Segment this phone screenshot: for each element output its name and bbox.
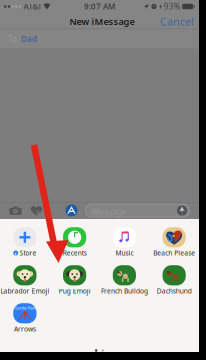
button[interactable]: Get the Point [0,303,50,341]
staticText: Arrows [14,325,36,333]
staticText: To: [8,33,21,44]
button[interactable]: Camera [6,202,24,219]
staticText: New iMessage [69,15,134,28]
button[interactable]: Labrador Emoji [0,265,50,303]
button[interactable]: Recents [50,227,100,265]
button[interactable]: French Bulldog [99,265,149,303]
staticText: Cancel [160,14,194,29]
button[interactable]: Digital Touch [27,202,45,219]
staticText: Get the Point [14,305,35,310]
staticText: 93% [164,1,181,12]
staticText: Pug Emoji [59,287,91,295]
button[interactable]: iMessage Apps [62,202,80,219]
button[interactable]: iMessage [85,204,189,217]
button[interactable]: Beach Please [149,227,199,265]
button[interactable]: Store [0,227,50,265]
button[interactable]: Music [99,227,149,265]
button[interactable]: Pug Emoji [50,265,100,303]
staticText: iMessage [90,207,126,217]
staticText: Music [115,249,133,257]
staticText: Dad [21,33,37,44]
staticText: Beach Please [153,249,195,257]
staticText: Dachshund [157,287,192,295]
button[interactable]: Cancel [155,13,199,29]
button[interactable]: Dachshund [149,265,199,303]
staticText: Store [19,249,36,257]
staticText: AT&T [23,1,41,12]
staticText: 9:07 AM [84,1,115,12]
button[interactable]: To: [0,29,199,48]
staticText: French Bulldog [101,287,148,295]
staticText: Recents [63,249,87,257]
staticText: Labrador Emoji [0,287,49,295]
